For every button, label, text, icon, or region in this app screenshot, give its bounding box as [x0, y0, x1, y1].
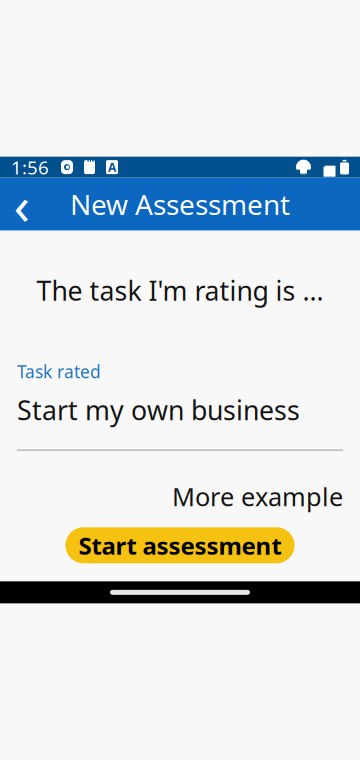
staticText: The task I'm rating is …: [36, 273, 323, 308]
button[interactable]: More example: [172, 474, 343, 519]
staticText: 1:56: [11, 155, 49, 180]
staticText: ‹: [13, 169, 30, 239]
staticText: Task rated: [17, 360, 101, 383]
staticText: New Assessment: [70, 186, 290, 223]
staticText: More example: [172, 480, 343, 513]
staticText: Start my own business: [17, 392, 300, 427]
button[interactable]: Start assessment: [65, 527, 294, 563]
button[interactable]: Back: [0, 182, 44, 226]
staticText: A: [108, 159, 116, 175]
staticText: Start assessment: [78, 529, 281, 561]
